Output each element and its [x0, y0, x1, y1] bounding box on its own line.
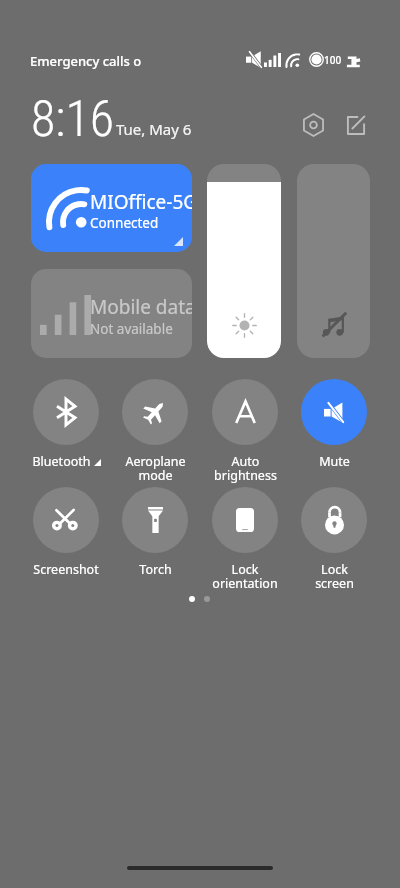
staticText: Lock orientation	[212, 561, 278, 592]
staticText: Auto brightness	[214, 453, 277, 484]
button[interactable]: Settings	[296, 108, 330, 142]
button[interactable]: Mobile data	[31, 269, 192, 358]
button[interactable]: MIOffice-5G	[31, 164, 192, 252]
button[interactable]: Screenshot	[20, 487, 112, 578]
button[interactable]: Auto brightness	[199, 379, 291, 484]
button[interactable]: Mute	[288, 379, 380, 470]
staticText: Mute	[319, 453, 350, 470]
staticText: Tue, May 6	[116, 119, 192, 139]
staticText: Screenshot	[33, 561, 99, 578]
staticText: Bluetooth	[32, 453, 91, 470]
staticText: MIOffice-5G	[90, 189, 192, 215]
staticText: Not available	[90, 320, 173, 338]
staticText: Aeroplane mode	[125, 453, 186, 484]
staticText: Connected	[90, 214, 159, 232]
staticText: Mobile data	[90, 294, 192, 320]
button[interactable]: Volume	[297, 164, 370, 358]
button[interactable]: Aeroplane mode	[109, 379, 201, 484]
staticText: 8:16	[31, 90, 115, 149]
staticText: Lock screen	[315, 561, 354, 592]
button[interactable]: Edit	[339, 108, 373, 142]
button[interactable]: Lock screen	[288, 487, 380, 592]
button[interactable]: Lock orientation	[199, 487, 291, 592]
staticText: Torch	[139, 561, 172, 578]
button[interactable]: Torch	[109, 487, 201, 578]
button[interactable]: Brightness	[207, 164, 281, 358]
button[interactable]: Bluetooth	[20, 379, 112, 470]
staticText: 100	[324, 53, 342, 67]
staticText: Emergency calls o	[30, 52, 142, 70]
